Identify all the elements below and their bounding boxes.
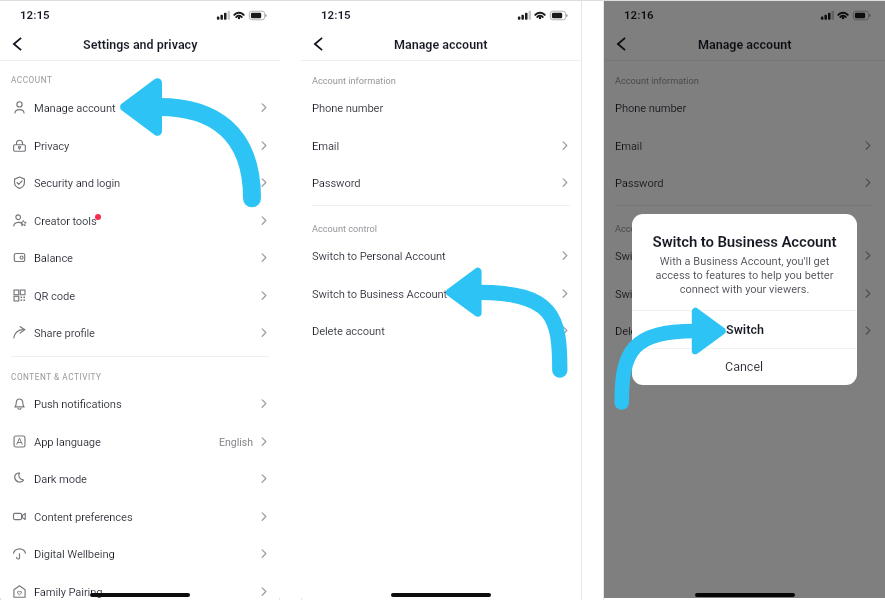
button[interactable]: Balance: [0, 239, 280, 277]
button[interactable]: Delete account: [301, 312, 581, 350]
staticText: Account control: [312, 223, 377, 234]
staticText: Phone number: [615, 102, 687, 115]
button[interactable]: Manage account: [0, 89, 280, 127]
staticText: Account information: [615, 75, 699, 86]
button[interactable]: Phone number: [301, 89, 581, 127]
staticText: ACCOUNT: [11, 75, 53, 85]
staticText: Digital Wellbeing: [34, 548, 115, 561]
button[interactable]: QR code: [0, 277, 280, 315]
staticText: Password: [615, 177, 664, 190]
staticText: Phone number: [312, 102, 384, 115]
button[interactable]: Email: [604, 127, 885, 165]
staticText: Share profile: [34, 327, 95, 340]
staticText: Switch to Personal Account: [312, 250, 446, 263]
staticText: Delete account: [615, 325, 688, 338]
staticText: Push notifications: [34, 398, 122, 411]
staticText: Settings and privacy: [83, 37, 198, 52]
staticText: Content preferences: [34, 511, 133, 524]
staticText: 12:16: [624, 8, 654, 21]
button[interactable]: Password: [301, 164, 581, 202]
button[interactable]: Digital Wellbeing: [0, 535, 280, 573]
staticText: With a Business Account, you'll get acce…: [646, 255, 843, 296]
button[interactable]: Switch to Business Account: [301, 275, 581, 313]
staticText: Switch to Business Account: [615, 288, 751, 301]
button[interactable]: Switch to Personal Account: [301, 237, 581, 275]
staticText: CONTENT & ACTIVITY: [11, 372, 102, 382]
button[interactable]: Password: [604, 164, 885, 202]
button[interactable]: Back: [302, 29, 334, 59]
staticText: Balance: [34, 252, 73, 265]
button[interactable]: Phone number: [604, 89, 885, 127]
staticText: Account control: [615, 223, 680, 234]
button[interactable]: Switch to Business Account: [604, 275, 885, 313]
staticText: Manage account: [34, 102, 116, 115]
staticText: Manage account: [698, 37, 792, 52]
button[interactable]: Back: [1, 29, 33, 59]
button[interactable]: Dark mode: [0, 460, 280, 498]
staticText: QR code: [34, 290, 75, 303]
staticText: Delete account: [312, 325, 385, 338]
staticText: Family Pairing: [34, 586, 103, 599]
staticText: Creator tools: [34, 215, 97, 228]
button[interactable]: Security and login: [0, 164, 280, 202]
staticText: App language: [34, 436, 101, 449]
button[interactable]: Creator tools: [0, 202, 280, 240]
staticText: Dark mode: [34, 473, 87, 486]
button[interactable]: Email: [301, 127, 581, 165]
staticText: 12:15: [321, 8, 351, 21]
staticText: Switch: [726, 322, 764, 337]
button[interactable]: Switch: [632, 310, 857, 348]
staticText: Switch to Business Account: [312, 288, 448, 301]
staticText: Password: [312, 177, 361, 190]
staticText: Cancel: [725, 359, 764, 374]
button[interactable]: Cancel: [632, 348, 857, 385]
button[interactable]: Switch to Personal Account: [604, 237, 885, 275]
staticText: Security and login: [34, 177, 121, 190]
button[interactable]: Share profile: [0, 314, 280, 352]
staticText: Account information: [312, 75, 396, 86]
staticText: Email: [312, 140, 340, 153]
staticText: 12:15: [20, 8, 50, 21]
button[interactable]: Family Pairing: [0, 573, 280, 600]
staticText: Switch to Personal Account: [615, 250, 749, 263]
staticText: English: [219, 436, 253, 448]
button[interactable]: Delete account: [604, 312, 885, 350]
staticText: Switch to Business Account: [632, 233, 857, 251]
staticText: Manage account: [394, 37, 488, 52]
button[interactable]: Push notifications: [0, 385, 280, 423]
staticText: Privacy: [34, 140, 70, 153]
button[interactable]: App language: [0, 423, 280, 461]
button[interactable]: Content preferences: [0, 498, 280, 536]
button[interactable]: Privacy: [0, 127, 280, 165]
staticText: Email: [615, 140, 643, 153]
button[interactable]: Back: [605, 29, 637, 59]
